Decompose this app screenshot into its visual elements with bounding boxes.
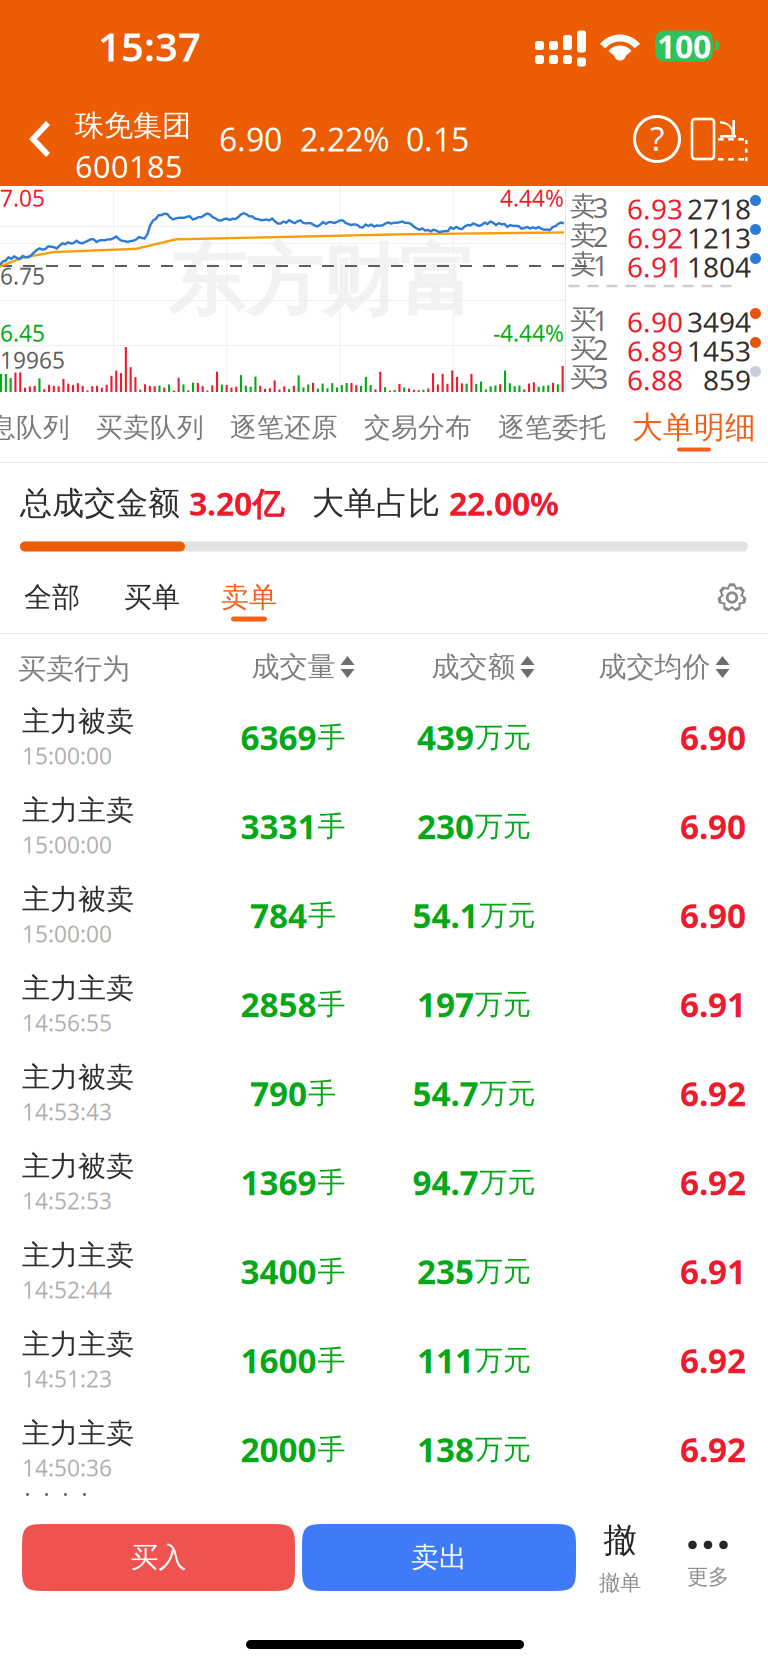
staticText: 买 (570, 332, 597, 365)
staticText: 15:00:00 (22, 741, 112, 771)
staticText: -4.44% (493, 318, 564, 348)
staticText: 7.05 (0, 183, 45, 213)
button[interactable]: 买入 (22, 1524, 295, 1591)
button[interactable]: 大单明细 (619, 392, 768, 463)
staticText: 手 (317, 987, 345, 1022)
staticText: 1453 (687, 332, 751, 369)
button[interactable]: 买单 (104, 561, 200, 634)
staticText: 买入 (130, 1540, 186, 1575)
staticText: 111 (417, 1338, 474, 1383)
staticText: 卖 (570, 219, 597, 252)
staticText: 买 (570, 303, 597, 336)
staticText: 主力被卖 (22, 882, 134, 917)
staticText: 6.45 (0, 318, 45, 348)
button[interactable]: 逐笔委托 (485, 392, 619, 463)
staticText: 1804 (687, 248, 751, 285)
button[interactable]: 息队列 (0, 392, 83, 463)
staticText: 2 (593, 332, 608, 367)
staticText: 94.7 (412, 1160, 478, 1205)
button[interactable]: 逐笔还原 (217, 392, 351, 463)
staticText: 235 (417, 1249, 474, 1294)
staticText: 14:56:55 (22, 1008, 112, 1038)
staticText: 珠免集团 (75, 108, 191, 144)
staticText: 手 (317, 720, 345, 755)
staticText: 手 (308, 898, 336, 933)
staticText: 撤 (603, 1520, 636, 1561)
staticText: 全部 (24, 580, 80, 615)
button[interactable]: 买卖队列 (83, 392, 217, 463)
staticText: 手 (317, 1432, 345, 1467)
staticText: 2.22% (300, 118, 390, 160)
staticText: 息队列 (0, 411, 70, 444)
staticText: 主力主卖 (22, 971, 134, 1006)
staticText: 1 (593, 303, 608, 338)
staticText: 6369 (240, 715, 316, 760)
staticText: 6.88 (627, 361, 683, 398)
staticText: 54.1 (412, 893, 478, 938)
button[interactable]: 卖单 (200, 561, 298, 634)
staticText: 手 (317, 1343, 345, 1378)
staticText: 784 (250, 893, 307, 938)
staticText: 6.90 (680, 893, 746, 938)
button[interactable]: 交易分布 (351, 392, 485, 463)
button[interactable]: 全部 (0, 561, 104, 634)
staticText: 138 (417, 1427, 474, 1472)
staticText: 100 (657, 25, 711, 67)
staticText: 6.91 (627, 248, 683, 285)
staticText: 主力被卖 (22, 1060, 134, 1095)
staticText: 0.15 (406, 118, 469, 160)
staticText: 卖 (570, 190, 597, 223)
button[interactable]: 撤 (577, 1523, 663, 1593)
button[interactable]: 切换布局 (686, 108, 744, 170)
staticText: 卖 (570, 248, 597, 281)
staticText: 买 (570, 361, 597, 394)
staticText: 万元 (475, 1254, 531, 1289)
staticText: 东方财富 (168, 234, 476, 329)
staticText: 成交均价 (598, 650, 710, 684)
button[interactable]: 设置 (699, 561, 765, 634)
staticText: 3331 (240, 804, 316, 849)
staticText: 14:52:44 (22, 1275, 112, 1305)
staticText: 手 (317, 809, 345, 844)
staticText: 2718 (687, 190, 751, 227)
staticText: 2000 (240, 1427, 316, 1472)
staticText: 万元 (479, 898, 535, 933)
button[interactable]: 帮助 (628, 108, 686, 170)
staticText: 6.90 (680, 715, 746, 760)
staticText: 手 (317, 1254, 345, 1289)
staticText: 手 (317, 1165, 345, 1200)
staticText: 主力被卖 (22, 704, 134, 739)
staticText: 卖单 (221, 580, 277, 615)
staticText: 4.44% (500, 183, 564, 213)
button[interactable]: 返回 (0, 114, 70, 164)
staticText: 6.90 (627, 303, 683, 340)
staticText: 14:52:53 (22, 1186, 112, 1216)
staticText: 大单明细 (632, 409, 756, 446)
staticText: 万元 (479, 1165, 535, 1200)
staticText: 54.7 (412, 1071, 478, 1116)
staticText: 成交量 (251, 650, 335, 684)
staticText: 6.92 (680, 1427, 746, 1472)
staticText: 万元 (479, 1076, 535, 1111)
staticText: 22.00% (449, 482, 559, 524)
staticText: 790 (250, 1071, 307, 1116)
staticText: 3.20亿 (189, 482, 284, 524)
staticText: 14:50:36 (22, 1453, 112, 1483)
button[interactable]: 卖出 (302, 1524, 576, 1591)
staticText: 万元 (475, 987, 531, 1022)
staticText: 14:53:43 (22, 1097, 112, 1127)
button[interactable]: 更多 (665, 1523, 751, 1593)
staticText: 1369 (240, 1160, 316, 1205)
staticText: 万元 (475, 1432, 531, 1467)
staticText: 逐笔委托 (498, 411, 606, 444)
staticText: 2858 (240, 982, 316, 1027)
staticText: 成交额 (431, 650, 515, 684)
staticText: 6.92 (627, 219, 683, 256)
staticText: 交易分布 (364, 411, 472, 444)
staticText: 总成交金额 (20, 484, 180, 523)
staticText: 3494 (687, 303, 751, 340)
staticText: 6.92 (680, 1160, 746, 1205)
staticText: 15:00:00 (22, 830, 112, 860)
staticText: 逐笔还原 (230, 411, 338, 444)
staticText: 15:37 (98, 19, 201, 72)
